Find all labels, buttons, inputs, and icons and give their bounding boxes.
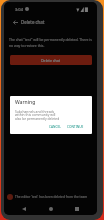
staticText: CANCEL [49,125,61,129]
button[interactable]: CONTINUE [65,124,86,130]
button[interactable]: Back [10,17,20,27]
staticText: The chat "test" will be permanently dele… [9,37,93,48]
button[interactable]: Home [45,203,57,215]
staticText: CONTINUE [67,125,84,129]
staticText: 3:04 [15,7,23,12]
button[interactable]: Delete chat [10,55,92,65]
staticText: Warning [15,99,36,106]
button[interactable]: Recent apps [71,203,83,215]
staticText: The editor 'test' has been deleted from … [15,195,88,199]
button[interactable]: CANCEL [47,124,63,130]
staticText: Delete chat [21,19,45,25]
button[interactable]: Back [18,203,30,215]
staticText: Delete chat [41,58,61,63]
staticText: Subchannels and threads within this comm… [15,109,61,121]
